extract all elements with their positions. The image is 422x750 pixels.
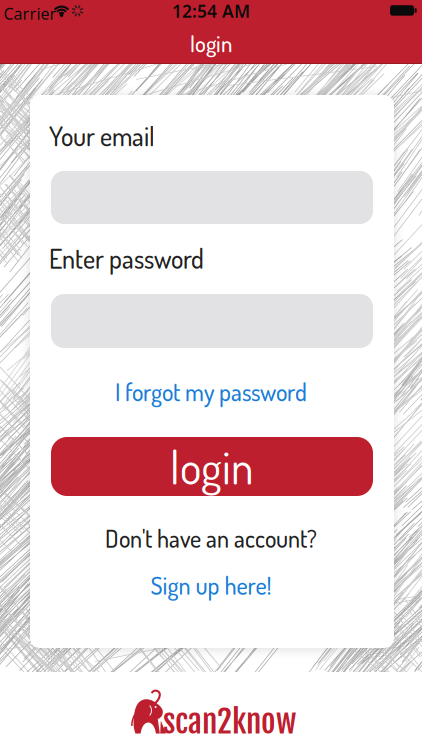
staticText: I forgot my password: [115, 376, 307, 407]
staticText: Sign up here!: [150, 570, 271, 600]
button[interactable]: login: [51, 437, 373, 496]
staticText: 12:54 AM: [172, 0, 250, 22]
button[interactable]: I forgot my password: [115, 376, 307, 407]
button[interactable]: Sign up here!: [150, 570, 271, 600]
staticText: Carrier: [3, 3, 56, 24]
staticText: login: [190, 29, 232, 58]
staticText: login: [170, 438, 254, 495]
staticText: Don't have an account?: [105, 523, 317, 553]
staticText: Your email: [49, 119, 155, 152]
staticText: scan2know: [163, 702, 296, 741]
staticText: Enter password: [49, 242, 204, 275]
